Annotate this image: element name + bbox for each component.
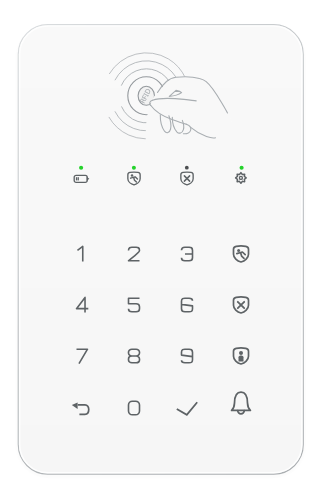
button[interactable]: 9	[165, 334, 209, 378]
button[interactable]: 2	[112, 232, 156, 276]
button[interactable]: 3	[165, 232, 209, 276]
button[interactable]: Backspace	[60, 386, 104, 430]
button[interactable]: 6	[165, 283, 209, 327]
button[interactable]: 1	[60, 232, 104, 276]
button[interactable]: 5	[112, 283, 156, 327]
button[interactable]: 4	[60, 283, 104, 327]
button[interactable]: Arm home	[219, 334, 263, 378]
button[interactable]: 8	[112, 334, 156, 378]
staticText: RFID	[138, 87, 154, 105]
button[interactable]: Confirm	[165, 386, 209, 430]
button[interactable]: RFID reader	[134, 84, 158, 108]
button[interactable]: 7	[60, 334, 104, 378]
button[interactable]: Panic alarm	[219, 386, 263, 430]
button[interactable]: 0	[112, 386, 156, 430]
button[interactable]: Arm away	[219, 232, 263, 276]
button[interactable]: Disarm	[219, 283, 263, 327]
